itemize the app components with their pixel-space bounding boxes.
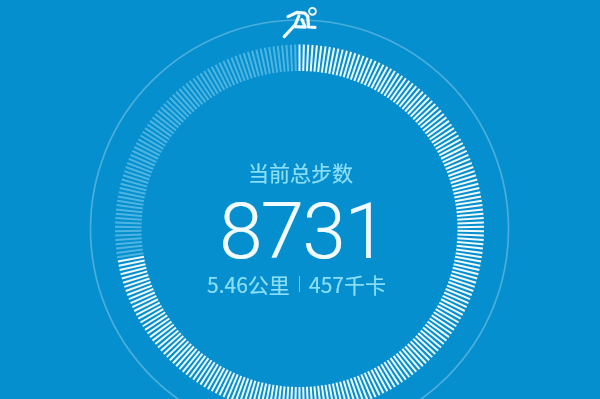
staticText: 457千卡 <box>309 269 386 299</box>
button[interactable]: Running activity <box>281 4 317 40</box>
staticText: 5.46公里 <box>207 269 290 299</box>
staticText: 8731 <box>219 186 386 277</box>
staticText: 当前总步数 <box>248 157 353 187</box>
